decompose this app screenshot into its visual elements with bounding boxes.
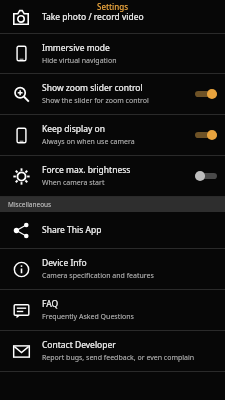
button[interactable]: Contact Developer — [0, 331, 225, 371]
button[interactable]: Keep display on — [0, 115, 225, 155]
button[interactable]: Share This App — [0, 212, 225, 248]
staticText: Always on when use camera — [42, 137, 135, 147]
button[interactable]: Force max. brightness — [0, 156, 225, 196]
button[interactable]: Settings — [0, 0, 225, 33]
staticText: When camera start — [42, 178, 105, 188]
button[interactable]: Show zoom slider control, on — [187, 74, 225, 114]
button[interactable]: Immersive mode — [0, 34, 225, 73]
button[interactable]: Show zoom slider control — [0, 74, 225, 114]
button[interactable]: Device Info — [0, 249, 225, 289]
staticText: Share This App — [42, 224, 102, 236]
staticText: Contact Developer — [42, 339, 116, 351]
staticText: Force max. brightness — [42, 164, 131, 176]
button[interactable]: FAQ — [0, 290, 225, 330]
staticText: Frequently Asked Questions — [42, 312, 134, 322]
staticText: Show zoom slider control — [42, 82, 143, 94]
button[interactable]: Keep display on, on — [187, 115, 225, 155]
staticText: Miscellaneous — [8, 200, 52, 209]
staticText: Camera specification and features — [42, 271, 154, 281]
staticText: Hide virtual navigation — [42, 56, 117, 66]
staticText: Immersive mode — [42, 42, 110, 54]
staticText: FAQ — [42, 298, 59, 310]
button[interactable]: Force max. brightness, off — [187, 156, 225, 196]
staticText: Keep display on — [42, 123, 105, 135]
staticText: Take photo / record video — [42, 11, 144, 23]
staticText: Settings — [97, 1, 129, 12]
staticText: Device Info — [42, 257, 87, 269]
staticText: Report bugs, send feedback, or even comp… — [42, 353, 195, 363]
staticText: Show the slider for zoom control — [42, 96, 149, 106]
